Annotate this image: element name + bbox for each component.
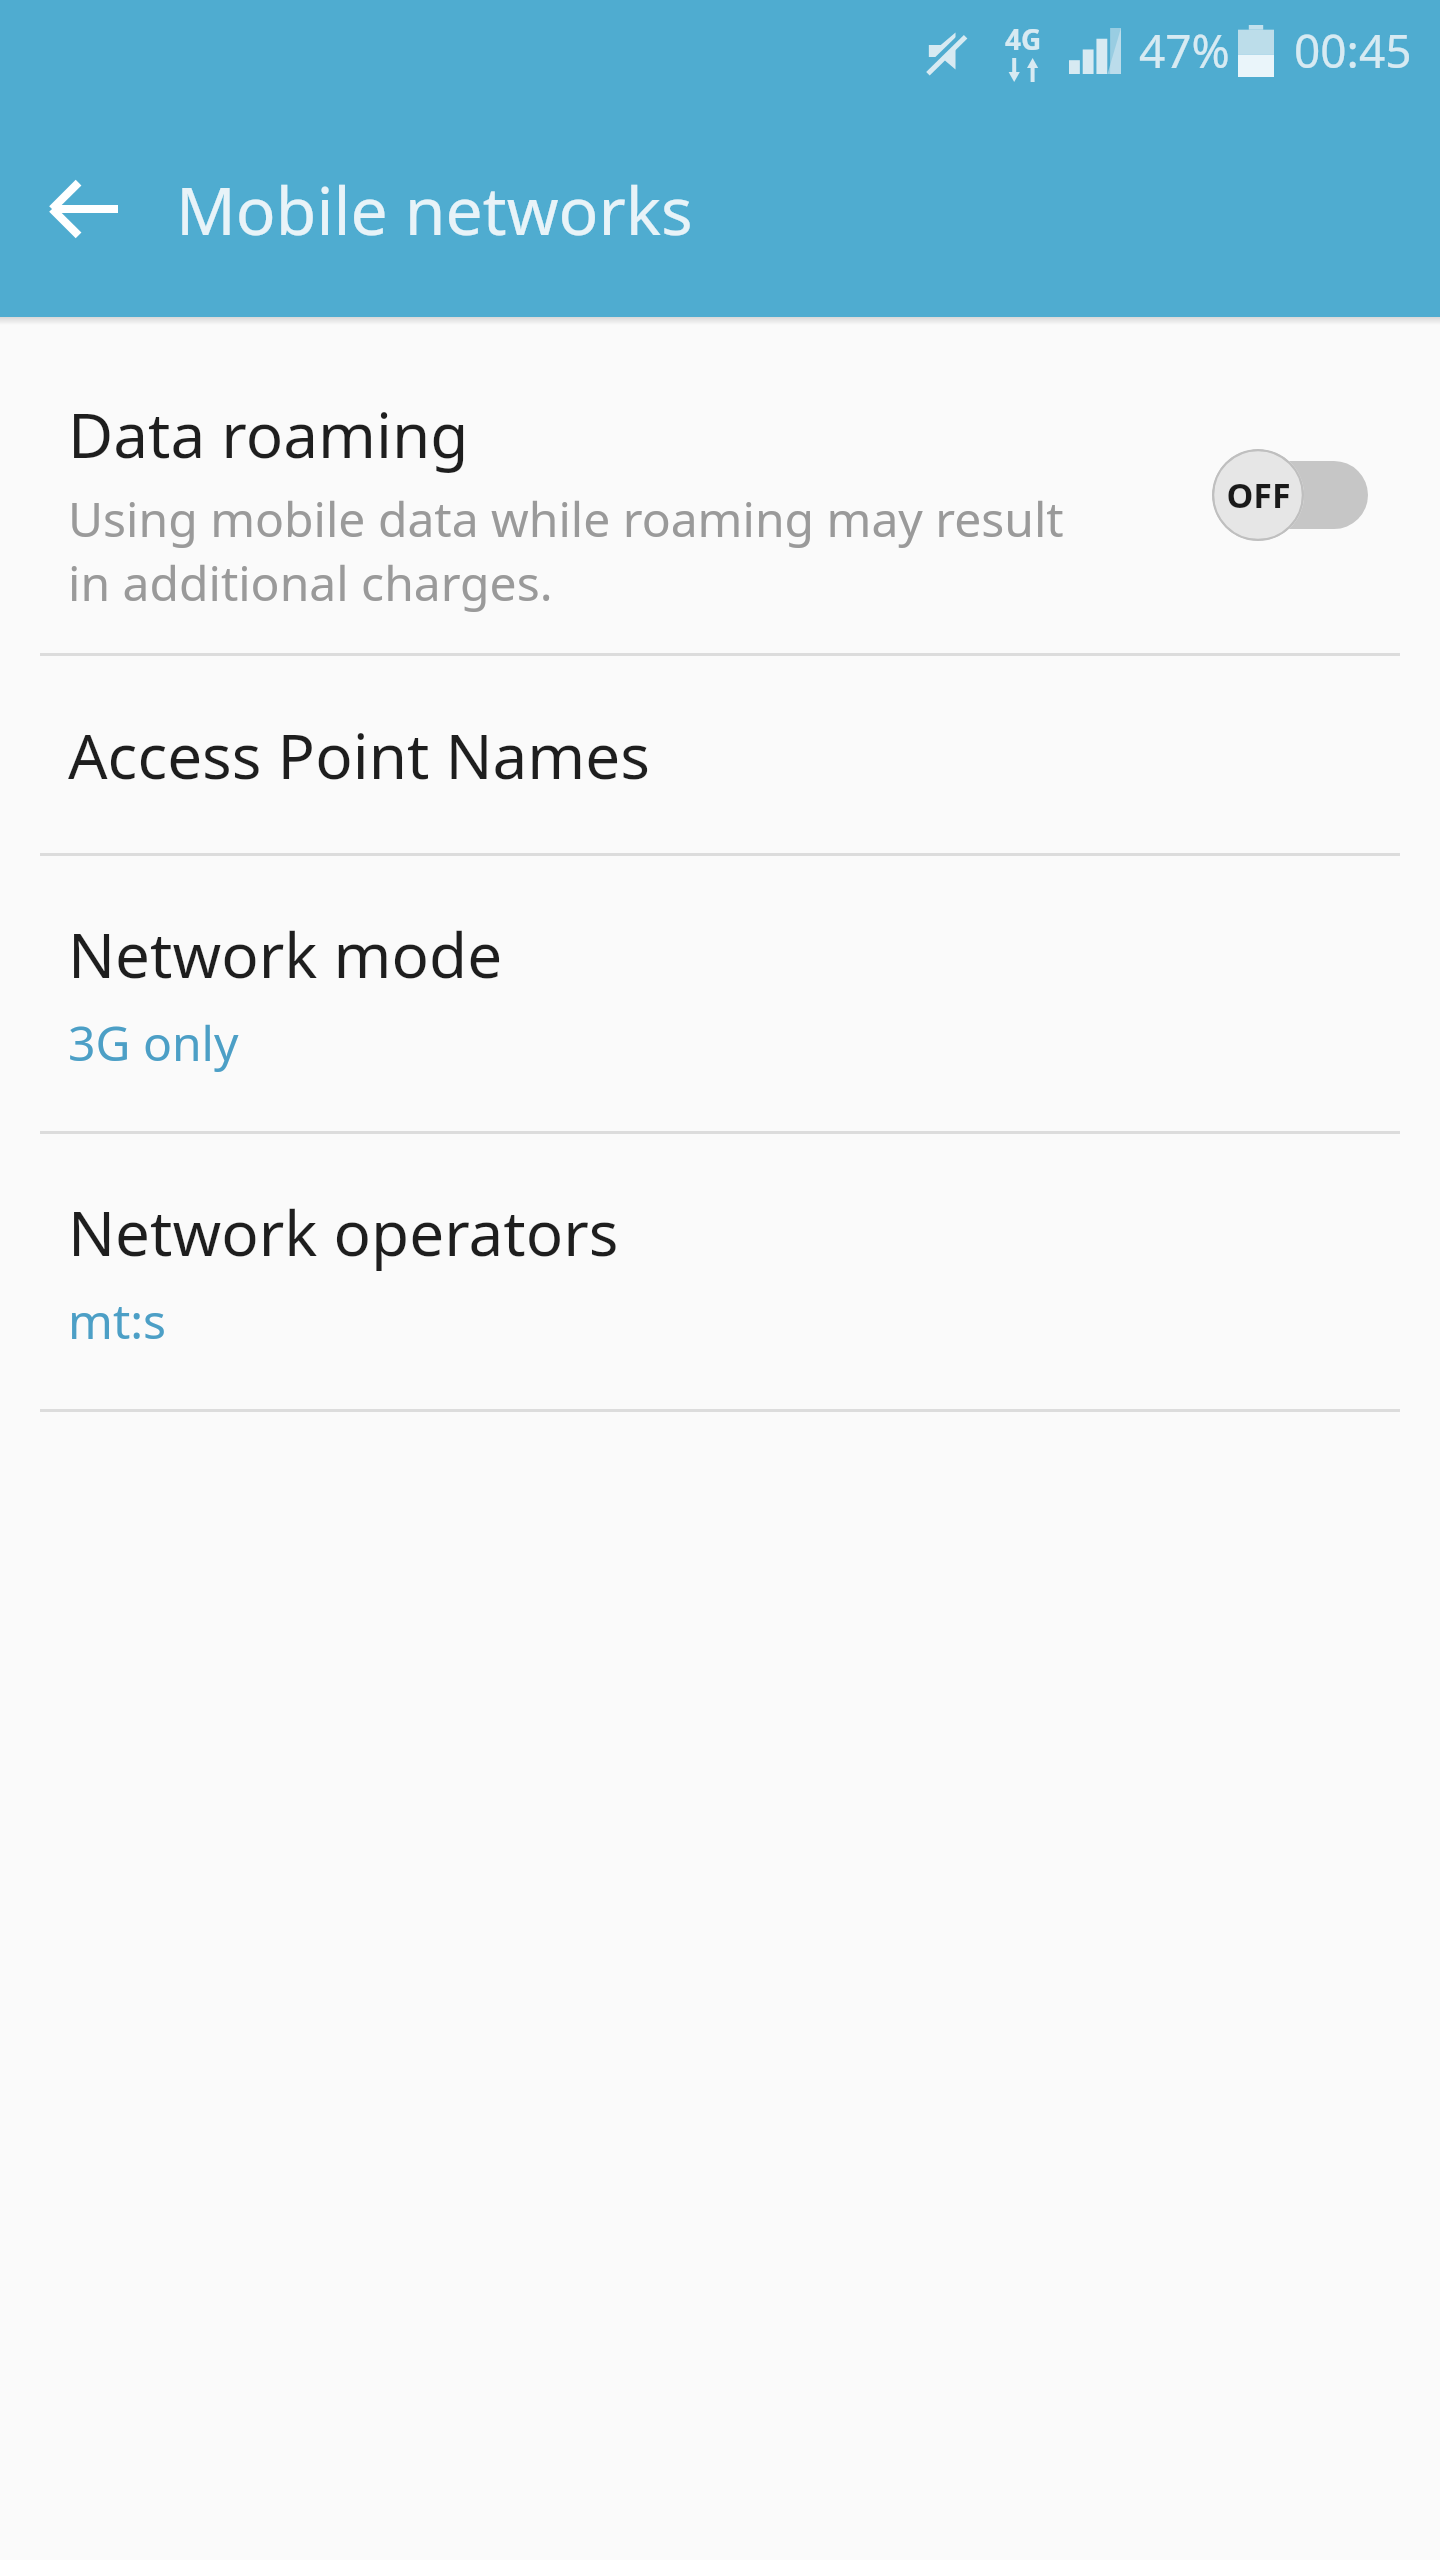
staticText: 47% (1139, 19, 1230, 82)
button[interactable]: Access Point Names (0, 656, 1440, 853)
staticText: 3G only (68, 1010, 239, 1075)
staticText: Network mode (68, 912, 503, 996)
button[interactable]: Navigate up (36, 161, 132, 257)
staticText: mt:s (68, 1288, 167, 1353)
staticText: Mobile networks (176, 164, 693, 254)
staticText: Network operators (68, 1190, 619, 1274)
button[interactable]: Network operators (0, 1134, 1440, 1409)
staticText: 00:45 (1294, 19, 1412, 82)
button[interactable]: Data roaming off (1212, 447, 1372, 543)
staticText: Access Point Names (68, 713, 650, 797)
staticText: OFF (1226, 472, 1291, 518)
button[interactable]: Data roaming (0, 353, 1440, 653)
staticText: Data roaming (68, 392, 469, 476)
staticText: 4G (1005, 20, 1042, 58)
button[interactable]: Network mode (0, 856, 1440, 1131)
staticText: Using mobile data while roaming may resu… (68, 486, 1064, 615)
